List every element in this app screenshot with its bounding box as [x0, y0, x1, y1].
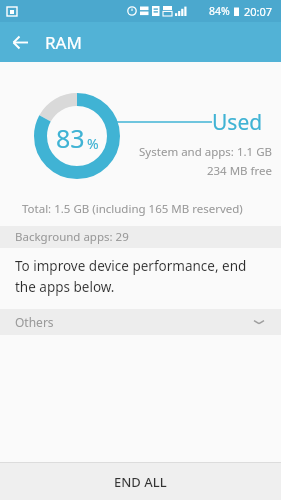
- button[interactable]: END ALL: [0, 463, 281, 500]
- staticText: %: [87, 134, 99, 153]
- staticText: RAM: [45, 31, 82, 54]
- staticText: Others: [15, 314, 253, 330]
- staticText: System and apps: 1.1 GB: [139, 144, 272, 160]
- staticText: 20:07: [244, 4, 273, 19]
- button[interactable]: Navigate up: [0, 22, 40, 62]
- staticText: To improve device performance, end the a…: [15, 257, 263, 296]
- staticText: 83: [56, 121, 85, 155]
- staticText: Total: 1.5 GB (including 165 MB reserved…: [22, 201, 243, 217]
- staticText: 234 MB free: [206, 163, 272, 179]
- button[interactable]: Others: [0, 309, 281, 335]
- staticText: 84%: [209, 4, 230, 18]
- staticText: Background apps: 29: [15, 229, 129, 245]
- staticText: Used: [212, 108, 263, 137]
- staticText: END ALL: [114, 473, 167, 491]
